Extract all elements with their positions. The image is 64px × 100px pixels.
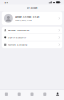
button[interactable]: Search <box>38 90 51 100</box>
button[interactable]: Sameer Ahmed Khan <box>2 12 62 25</box>
button[interactable]: Payment & Shipping <box>2 41 62 48</box>
staticText: Sameer Ahmed Khan <box>15 15 40 18</box>
button[interactable]: Personal Information <box>2 27 62 34</box>
button[interactable]: Sign-In & Security <box>2 34 62 41</box>
button[interactable]: Today <box>0 90 13 100</box>
staticText: Personal Information <box>8 29 29 32</box>
staticText: 9:41 <box>4 1 8 4</box>
staticText: Apple ID, iCloud, Media <box>15 19 32 21</box>
staticText: Sign-In & Security <box>8 36 26 39</box>
button[interactable]: Apps <box>26 90 38 100</box>
button[interactable]: Games <box>13 90 26 100</box>
button[interactable]: Account <box>51 90 64 100</box>
staticText: Payment & Shipping <box>8 43 27 46</box>
staticText: My Account <box>26 6 37 9</box>
